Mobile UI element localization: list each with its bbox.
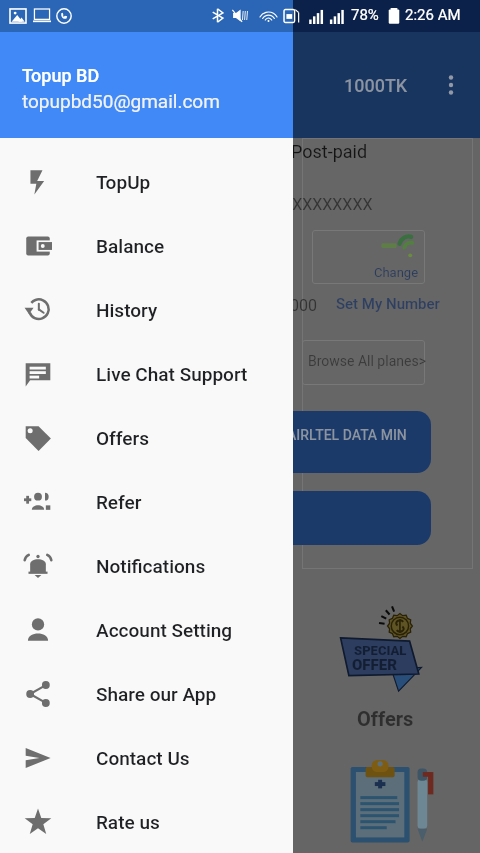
staticText: Balance [96, 235, 165, 257]
staticText: Share our App [96, 683, 217, 705]
button[interactable] [302, 340, 425, 385]
button[interactable]: Account Setting [0, 598, 293, 662]
button[interactable]: Share our App [0, 662, 293, 726]
staticText: 78% [351, 6, 379, 24]
staticText: History [96, 299, 158, 321]
staticText: SPECIAL [354, 643, 407, 658]
staticText: Browse All planes> [308, 353, 426, 369]
button[interactable]: TopUp [0, 150, 293, 214]
staticText: 2:26 AM [405, 6, 461, 24]
staticText: OFFER [352, 656, 397, 674]
button[interactable]: Balance [0, 214, 293, 278]
staticText: Offers [96, 427, 150, 449]
button[interactable]: Offers [0, 406, 293, 470]
button[interactable]: Set My Number [336, 295, 440, 313]
staticText: Topup BD [22, 65, 100, 86]
staticText: Account Setting [96, 619, 233, 641]
staticText: 1000TK [344, 75, 408, 96]
staticText: topupbd50@gmail.com [22, 90, 220, 112]
button[interactable]: Offers [357, 707, 414, 730]
staticText: TopUp [96, 171, 151, 193]
staticText: Change [374, 265, 419, 280]
staticText: XXXXXXXXXXXXXX [232, 195, 373, 214]
staticText: Rate us [96, 811, 160, 833]
button[interactable]: History [0, 278, 293, 342]
staticText: AIRLTEL DATA MIN [287, 427, 407, 443]
staticText: Live Chat Support [96, 363, 248, 385]
staticText: Refer [96, 491, 142, 513]
button[interactable]: Contact Us [0, 726, 293, 790]
button[interactable]: Post-paid [291, 141, 368, 162]
button[interactable]: AIRLTEL DATA MIN [262, 411, 431, 473]
button[interactable] [262, 491, 431, 545]
button[interactable]: Live Chat Support [0, 342, 293, 406]
staticText: Contact Us [96, 747, 190, 769]
button[interactable]: More options [430, 64, 472, 106]
button[interactable]: Notifications [0, 534, 293, 598]
staticText: 2000 [281, 296, 317, 315]
button[interactable]: Refer [0, 470, 293, 534]
button[interactable]: Rate us [0, 790, 293, 853]
button[interactable]: Change [312, 230, 425, 284]
staticText: Notifications [96, 555, 206, 577]
